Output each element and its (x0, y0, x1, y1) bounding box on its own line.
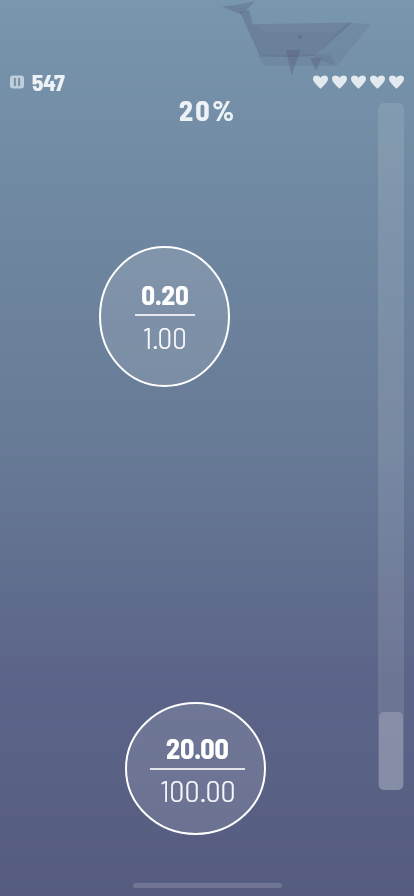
staticText: 20% (179, 93, 237, 127)
button[interactable]: Pause (10, 68, 65, 96)
button[interactable]: 0.20 (99, 246, 230, 387)
button[interactable]: Scroll position (378, 103, 404, 790)
staticText: 1.00 (143, 320, 187, 355)
staticText: 547 (32, 68, 65, 96)
staticText: 0.20 (141, 278, 189, 310)
staticText: 100.00 (160, 772, 236, 808)
staticText: 20.00 (166, 731, 229, 765)
button[interactable]: 20.00 (125, 702, 266, 835)
